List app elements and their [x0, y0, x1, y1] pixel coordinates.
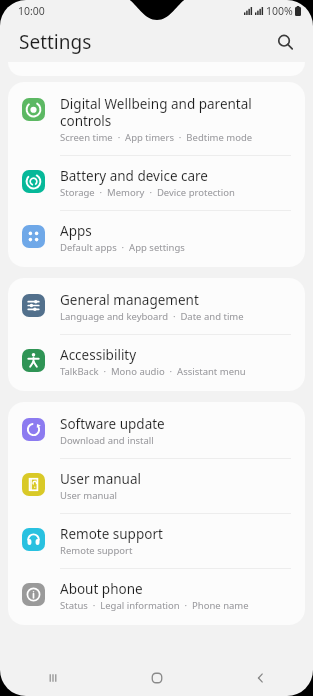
staticText: User manual: [60, 470, 141, 488]
button[interactable]: General management: [8, 280, 305, 334]
button[interactable]: Accessibility: [8, 335, 305, 389]
staticText: Remote support: [60, 525, 163, 543]
staticText: General management: [60, 291, 199, 309]
staticText: Language and keyboard · Date and time: [60, 310, 244, 323]
button[interactable]: Battery and device care: [8, 156, 305, 210]
staticText: Settings: [19, 29, 92, 55]
staticText: Default apps · App settings: [60, 241, 185, 254]
staticText: TalkBack · Mono audio · Assistant menu: [60, 365, 246, 378]
button[interactable]: Search: [269, 26, 301, 58]
staticText: User manual: [60, 489, 117, 502]
button[interactable]: Recent apps: [0, 660, 105, 696]
button[interactable]: About phone: [8, 569, 305, 623]
staticText: Screen time · App timers · Bedtime mode: [60, 131, 253, 144]
staticText: 100%: [266, 4, 293, 18]
staticText: 10:00: [18, 4, 45, 18]
staticText: Download and install: [60, 434, 154, 447]
button[interactable]: Apps: [8, 211, 305, 265]
staticText: Status · Legal information · Phone name: [60, 599, 249, 612]
staticText: Battery and device care: [60, 167, 208, 185]
button[interactable]: User manual: [8, 459, 305, 513]
staticText: Accessibility: [60, 346, 137, 364]
staticText: Digital Wellbeing and parental controls: [60, 95, 291, 130]
staticText: Software update: [60, 415, 165, 433]
button[interactable]: Digital Wellbeing and parental controls: [8, 84, 305, 155]
staticText: Remote support: [60, 544, 133, 557]
button[interactable]: Home: [105, 660, 209, 696]
staticText: Storage · Memory · Device protection: [60, 186, 235, 199]
staticText: Apps: [60, 222, 92, 240]
button[interactable]: Remote support: [8, 514, 305, 568]
button[interactable]: Software update: [8, 404, 305, 458]
staticText: About phone: [60, 580, 143, 598]
button[interactable]: Back: [209, 660, 313, 696]
